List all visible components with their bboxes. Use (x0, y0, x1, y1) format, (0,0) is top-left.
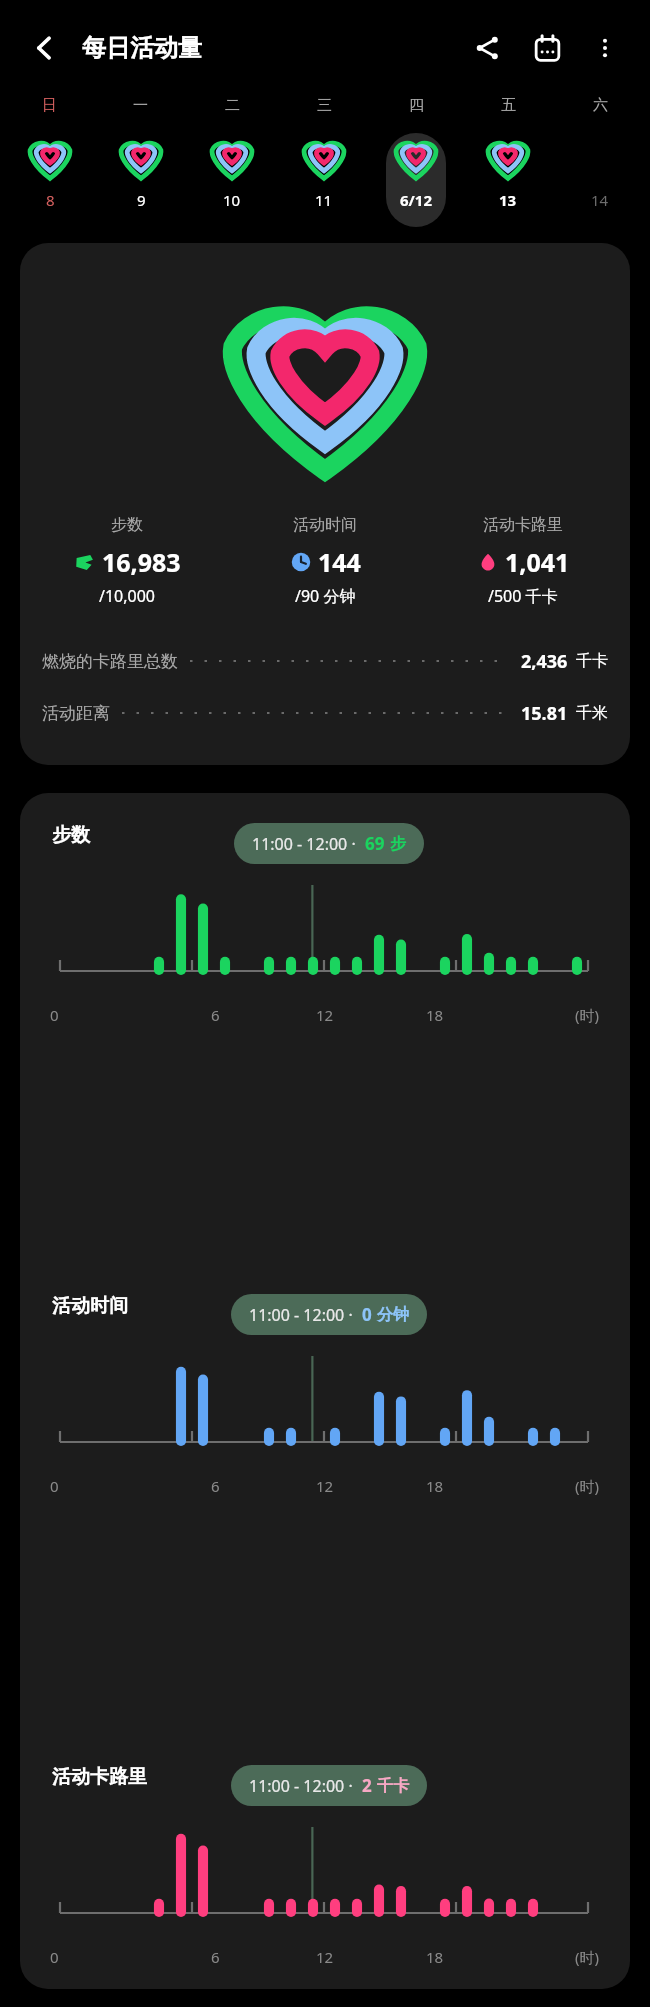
staticText: 144 (318, 545, 361, 579)
staticText: 五 (501, 96, 516, 115)
staticText: 活动时间 (52, 1294, 128, 1318)
staticText: 11:00 - 12:00 · (249, 1304, 353, 1326)
staticText: /10,000 (99, 585, 156, 607)
button[interactable]: 六 (554, 96, 646, 227)
staticText: 18 (426, 1476, 444, 1496)
staticText: 2 (362, 1774, 372, 1797)
button[interactable]: 燃烧的卡路里总数 (42, 635, 608, 687)
staticText: 6 (211, 1005, 220, 1025)
staticText: 活动距离 (42, 703, 110, 724)
staticText: 6 (211, 1947, 220, 1967)
staticText: 18 (426, 1005, 444, 1025)
button[interactable]: 五 (462, 96, 554, 227)
staticText: (时) (575, 1476, 600, 1496)
staticText: 12 (316, 1947, 334, 1967)
button[interactable]: 步数 (28, 515, 226, 607)
staticText: 0 (50, 1005, 59, 1025)
staticText: 千卡 (377, 1776, 409, 1796)
staticText: 1,041 (505, 545, 570, 579)
staticText: /90 分钟 (295, 585, 356, 607)
staticText: 13 (499, 190, 517, 210)
staticText: 8 (46, 190, 55, 210)
button[interactable]: More options (582, 25, 628, 71)
button[interactable]: Calendar (524, 25, 570, 71)
staticText: 二 (225, 96, 240, 115)
staticText: 16,983 (102, 545, 181, 579)
staticText: 18 (426, 1947, 444, 1967)
button[interactable]: 三 (278, 96, 370, 227)
staticText: 每日活动量 (82, 33, 202, 63)
button[interactable]: 日 (4, 96, 95, 227)
staticText: 15.81 (521, 701, 568, 726)
staticText: 千米 (576, 703, 608, 723)
staticText: 步数 (111, 515, 143, 535)
button[interactable]: 11:00 - 12:00 · (231, 1294, 427, 1335)
staticText: (时) (575, 1005, 600, 1025)
staticText: 燃烧的卡路里总数 (42, 651, 178, 672)
staticText: 11 (315, 190, 333, 210)
staticText: 一 (133, 96, 148, 115)
staticText: 0 (50, 1947, 59, 1967)
staticText: 六 (593, 96, 608, 115)
staticText: 11:00 - 12:00 · (252, 833, 356, 855)
button[interactable]: 活动卡路里 (424, 515, 622, 607)
staticText: 9 (137, 190, 146, 210)
staticText: 11:00 - 12:00 · (249, 1775, 353, 1797)
staticText: 6 (211, 1476, 220, 1496)
button[interactable]: 四 (370, 96, 462, 227)
staticText: 12 (316, 1005, 334, 1025)
button[interactable]: Share (464, 25, 510, 71)
staticText: 2,436 (521, 649, 568, 674)
staticText: 步 (390, 834, 406, 854)
staticText: 千卡 (576, 651, 608, 671)
staticText: /500 千卡 (488, 585, 558, 607)
staticText: 0 (50, 1476, 59, 1496)
staticText: 活动卡路里 (483, 515, 563, 535)
button[interactable]: 活动距离 (42, 687, 608, 739)
staticText: 三 (317, 96, 332, 115)
button[interactable]: 11:00 - 12:00 · (231, 1765, 427, 1806)
staticText: 日 (42, 96, 57, 115)
staticText: 69 (365, 832, 385, 855)
button[interactable]: 活动时间 (226, 515, 424, 607)
staticText: 12 (316, 1476, 334, 1496)
staticText: 四 (409, 96, 424, 115)
button[interactable]: 二 (186, 96, 278, 227)
button[interactable]: 一 (95, 96, 186, 227)
staticText: 活动卡路里 (52, 1765, 147, 1789)
staticText: 0 (362, 1303, 372, 1326)
staticText: (时) (575, 1947, 600, 1967)
staticText: 10 (223, 190, 241, 210)
staticText: 活动时间 (293, 515, 357, 535)
staticText: 6/12 (400, 190, 432, 210)
staticText: 分钟 (377, 1305, 409, 1325)
button[interactable]: 11:00 - 12:00 · (234, 823, 424, 864)
staticText: 14 (591, 190, 609, 210)
staticText: 步数 (52, 823, 90, 847)
button[interactable]: Back (22, 25, 68, 71)
